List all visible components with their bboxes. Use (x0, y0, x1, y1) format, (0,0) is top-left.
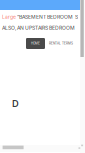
staticText: RENTAL TERMS (49, 42, 73, 45)
staticText: “BASEMENT BEDROOM S (16, 14, 78, 20)
staticText: Large (2, 14, 16, 20)
staticText: D (12, 98, 19, 109)
button[interactable]: RENTAL TERMS (49, 38, 75, 49)
staticText: ALSO, AN UPSTAIRS BEDROOM (2, 25, 75, 31)
button[interactable]: HOME (26, 38, 45, 49)
staticText: HOME (31, 42, 40, 45)
